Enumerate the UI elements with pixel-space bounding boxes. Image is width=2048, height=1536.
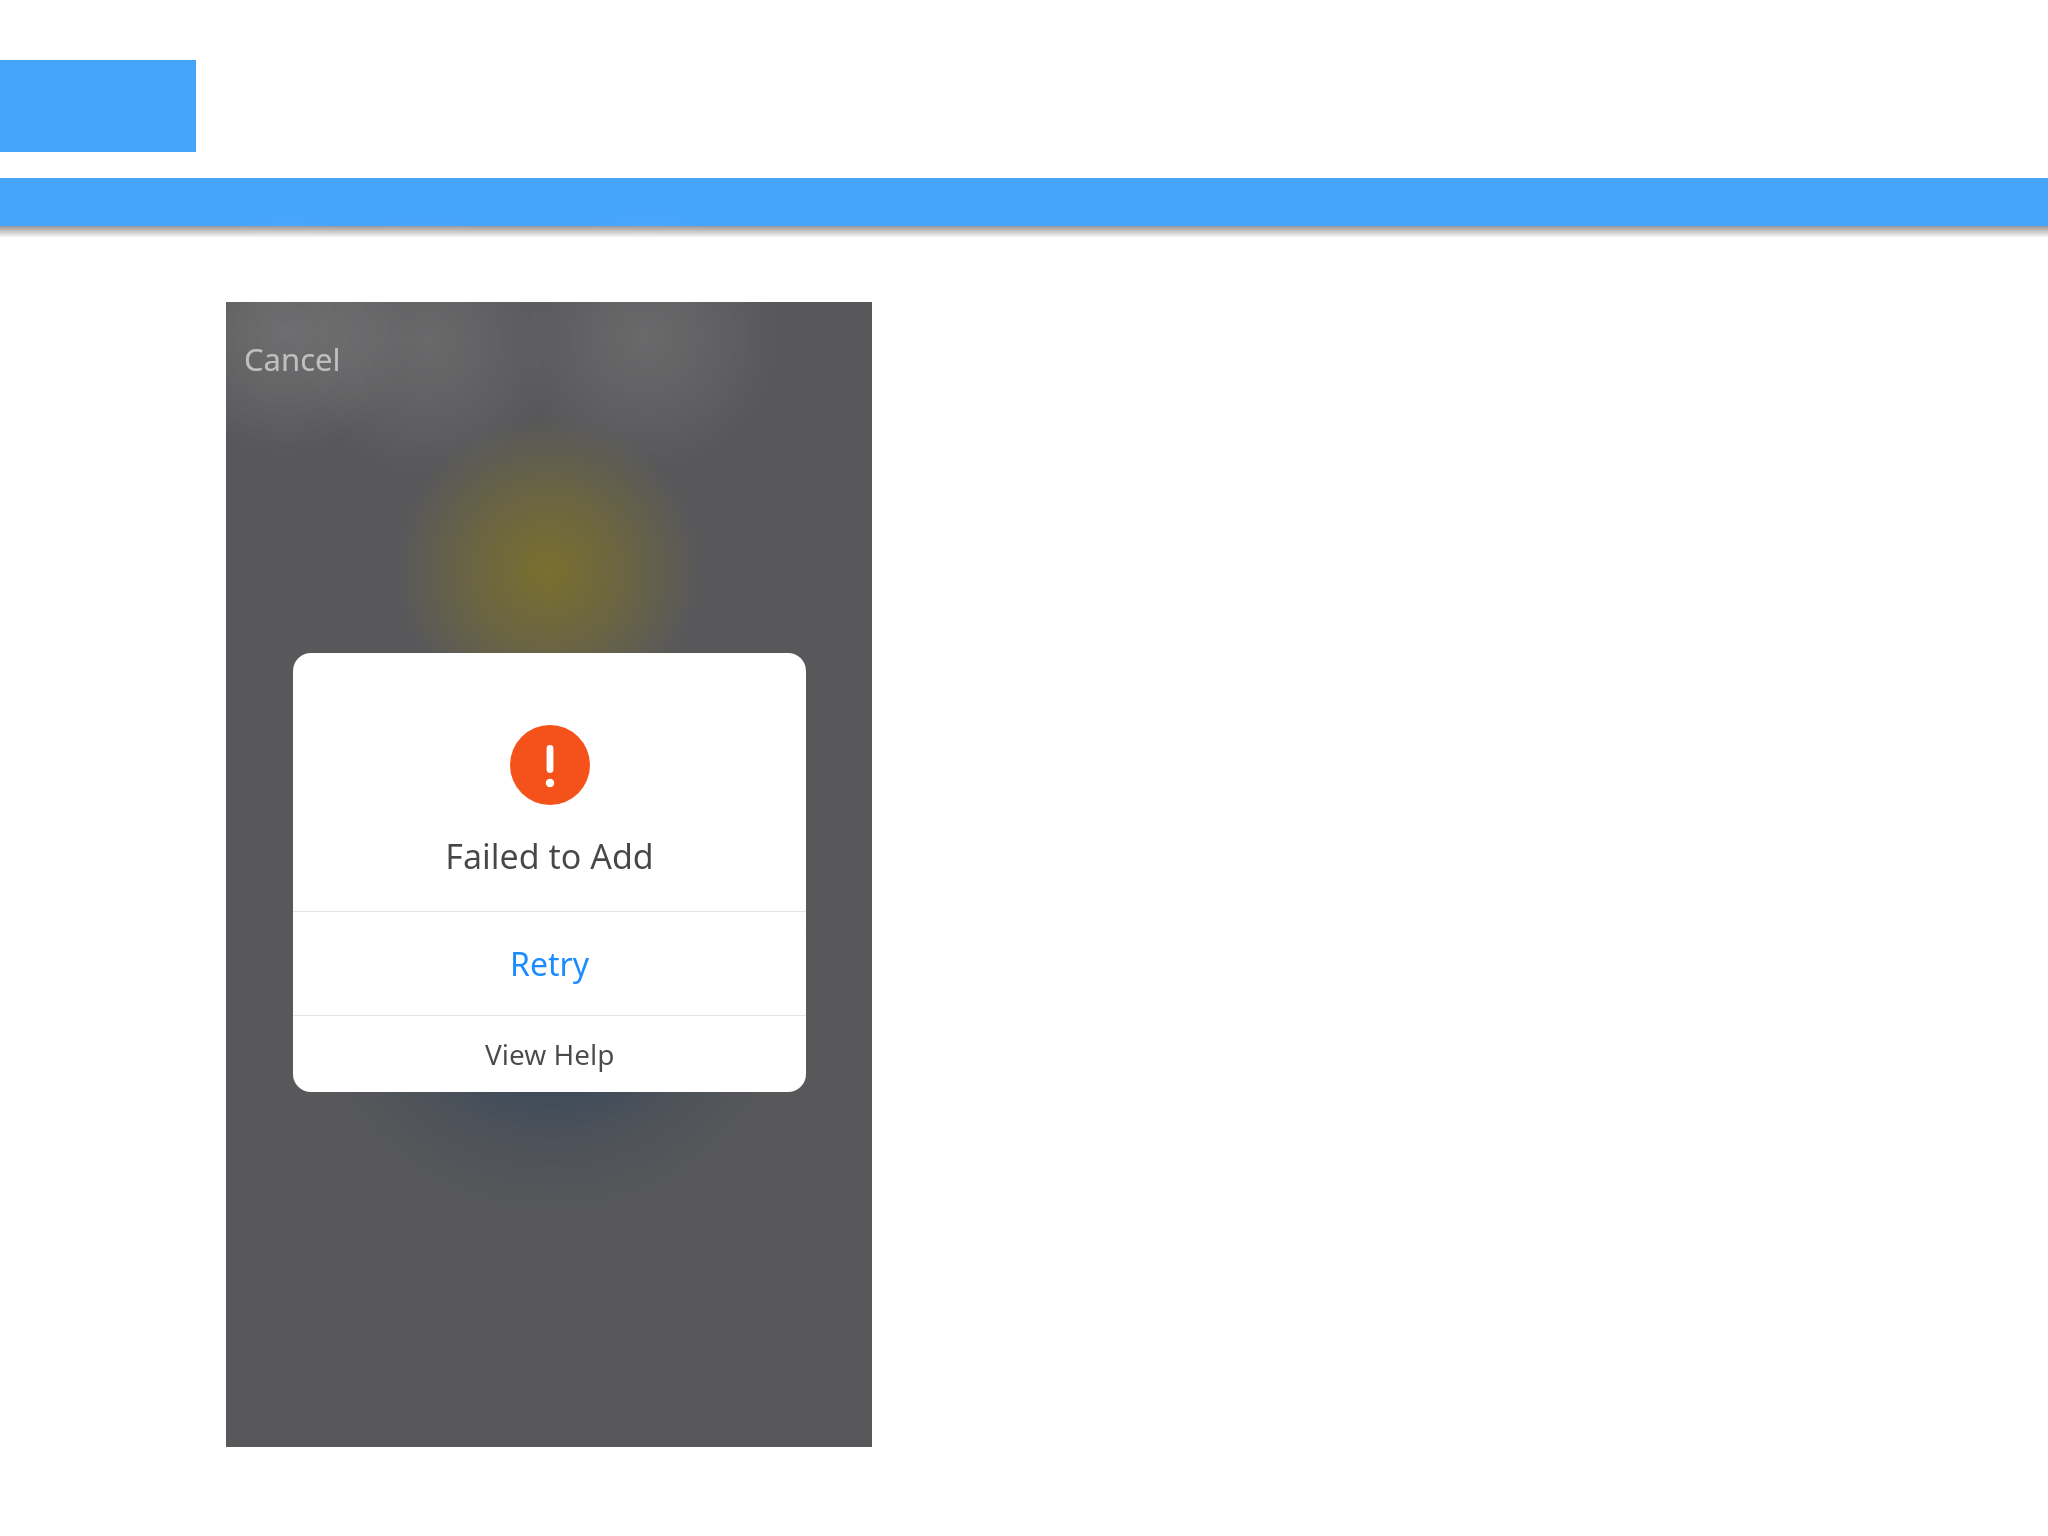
button[interactable]: Retry bbox=[293, 912, 806, 1015]
button[interactable]: Cancel bbox=[244, 338, 341, 380]
staticText: Cancel bbox=[244, 338, 341, 380]
button[interactable]: View Help bbox=[293, 1016, 806, 1092]
staticText: View Help bbox=[485, 1035, 615, 1073]
other: Error bbox=[510, 725, 590, 805]
staticText: Retry bbox=[510, 942, 590, 986]
staticText: Failed to Add bbox=[293, 833, 806, 879]
